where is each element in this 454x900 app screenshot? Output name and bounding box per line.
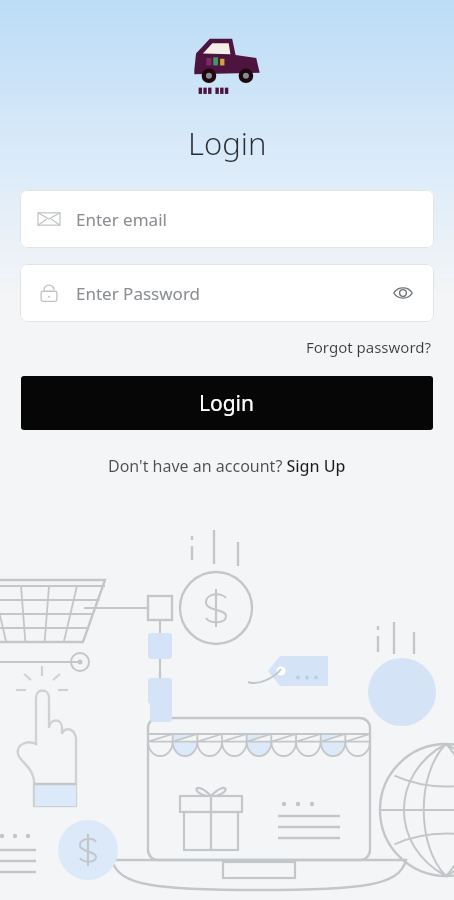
button[interactable]: Show password <box>390 280 416 306</box>
staticText: Login <box>199 389 255 418</box>
staticText: Don't have an account? Sign Up <box>108 455 346 477</box>
button[interactable]: Login <box>21 376 433 430</box>
staticText: Forgot password? <box>306 337 432 357</box>
button[interactable]: Don't have an account? Sign Up <box>104 452 350 480</box>
button[interactable]: Forgot password? <box>304 334 434 360</box>
staticText: Enter email <box>76 208 167 231</box>
button[interactable]: Enter Password <box>20 264 434 322</box>
button[interactable]: Enter email <box>20 190 434 248</box>
staticText: Login <box>188 122 267 164</box>
staticText: Enter Password <box>76 282 201 305</box>
